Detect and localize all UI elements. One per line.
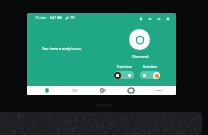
staticText: 72 clear <box>35 16 47 20</box>
button[interactable]: Thermostat <box>61 86 89 95</box>
staticText: Your home is ready to arm. <box>42 47 82 51</box>
staticText: Disarmed <box>132 54 149 59</box>
button[interactable]: Lights <box>117 86 145 95</box>
button[interactable]: Security <box>33 86 61 95</box>
button[interactable]: Back door <box>140 71 160 79</box>
staticText: 9:41 AM <box>50 16 62 20</box>
button[interactable]: Wifi <box>137 15 145 23</box>
staticText: 72° <box>72 88 79 93</box>
button[interactable]: Front door <box>114 71 134 79</box>
staticText: vivint <box>96 101 112 109</box>
button[interactable]: Cameras <box>89 86 117 95</box>
button[interactable]: Bluetooth <box>146 15 154 23</box>
button[interactable]: More <box>145 86 173 95</box>
staticText: Front door <box>117 65 132 69</box>
staticText: Back door <box>143 65 158 69</box>
staticText: 72° <box>70 16 75 20</box>
button[interactable]: Settings <box>164 15 172 23</box>
button[interactable]: Volume <box>155 15 163 23</box>
button[interactable]: Arm system <box>129 29 150 50</box>
